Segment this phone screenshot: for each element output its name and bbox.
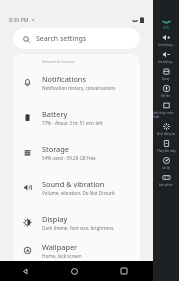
staticText: file lên xyxy=(161,94,171,98)
staticText: Notification history, conversations xyxy=(42,85,116,91)
staticText: cài lại xyxy=(162,166,170,170)
button[interactable]: âm lượng - xyxy=(153,48,179,65)
button[interactable]: Battery xyxy=(13,100,140,135)
button[interactable]: cài lại xyxy=(153,154,179,171)
staticText: khởi động lại xyxy=(157,132,176,136)
button[interactable]: Notifications xyxy=(13,65,140,100)
button[interactable]: bàn phím xyxy=(153,171,179,188)
staticText: bàn phím xyxy=(159,183,173,187)
button[interactable]: Sound & vibration xyxy=(13,170,140,205)
button[interactable]: Recent apps xyxy=(99,261,148,281)
staticText: Quay xyxy=(162,77,170,81)
button[interactable]: Network & internet xyxy=(13,54,140,65)
staticText: Wallpaper xyxy=(42,242,78,252)
button[interactable]: Storage xyxy=(13,135,140,170)
button[interactable]: ảnh chụp màn hình xyxy=(153,99,179,120)
staticText: 77% - About 3 hr, 51 min left xyxy=(42,120,103,126)
staticText: Thay đổi máy xyxy=(157,149,176,153)
button[interactable]: Quay xyxy=(153,65,179,82)
button[interactable]: âm lượng + xyxy=(153,31,179,48)
staticText: Volume, vibration, Do Not Disturb xyxy=(42,190,115,196)
staticText: Display xyxy=(42,214,68,224)
staticText: Home, lock screen xyxy=(42,253,82,259)
staticText: 54% used - 59.26 GB free xyxy=(42,155,96,161)
staticText: Battery xyxy=(42,109,68,119)
button[interactable]: Search settings xyxy=(13,28,140,49)
button[interactable]: Wallpaper xyxy=(13,240,140,261)
staticText: Search settings xyxy=(36,34,87,44)
staticText: âm lượng + xyxy=(158,43,175,47)
staticText: Dark theme, font size, brightness xyxy=(42,225,114,231)
staticText: Storage xyxy=(42,144,69,154)
staticText: Sound & vibration xyxy=(42,179,105,189)
staticText: 8:30 PM xyxy=(9,16,29,23)
staticText: Notifications xyxy=(42,74,86,84)
staticText: âm lượng - xyxy=(158,60,174,64)
button[interactable]: Back xyxy=(0,261,50,281)
button[interactable]: WIFI xyxy=(153,14,179,31)
button[interactable]: Thay đổi máy xyxy=(153,137,179,154)
button[interactable]: Home xyxy=(50,261,99,281)
button[interactable]: file lên xyxy=(153,82,179,99)
staticText: Network & internet xyxy=(42,59,75,64)
button[interactable]: Display xyxy=(13,205,140,240)
staticText: WIFI xyxy=(163,26,170,30)
staticText: ảnh chụp màn hình xyxy=(153,111,179,119)
button[interactable]: khởi động lại xyxy=(153,120,179,137)
